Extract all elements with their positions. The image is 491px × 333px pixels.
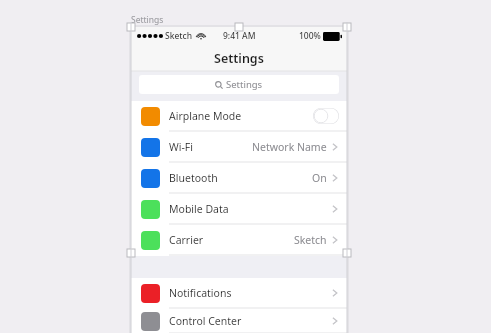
button[interactable]: Control Center: [131, 309, 347, 333]
staticText: On: [312, 171, 327, 185]
button[interactable]: Wi-Fi: [131, 132, 347, 162]
staticText: Carrier: [169, 233, 204, 247]
staticText: Wi-Fi: [169, 140, 194, 154]
button[interactable]: Airplane Mode toggle, off: [313, 108, 339, 124]
button[interactable]: Airplane Mode: [131, 101, 347, 131]
staticText: Control Center: [169, 314, 242, 328]
staticText: 100%: [299, 30, 321, 42]
staticText: Settings: [226, 78, 263, 91]
staticText: Mobile Data: [169, 202, 229, 216]
staticText: Notifications: [169, 286, 232, 300]
staticText: Sketch: [165, 30, 193, 42]
button[interactable]: Mobile Data: [131, 194, 347, 224]
button[interactable]: Settings: [139, 75, 339, 94]
staticText: Airplane Mode: [169, 109, 242, 123]
staticText: Settings: [214, 50, 264, 67]
staticText: Bluetooth: [169, 171, 218, 185]
button[interactable]: Notifications: [131, 278, 347, 308]
staticText: Settings: [131, 14, 164, 26]
button[interactable]: Carrier: [131, 225, 347, 255]
staticText: 9:41 AM: [223, 30, 256, 42]
staticText: Network Name: [252, 140, 327, 154]
staticText: Sketch: [294, 233, 327, 247]
button[interactable]: Bluetooth: [131, 163, 347, 193]
